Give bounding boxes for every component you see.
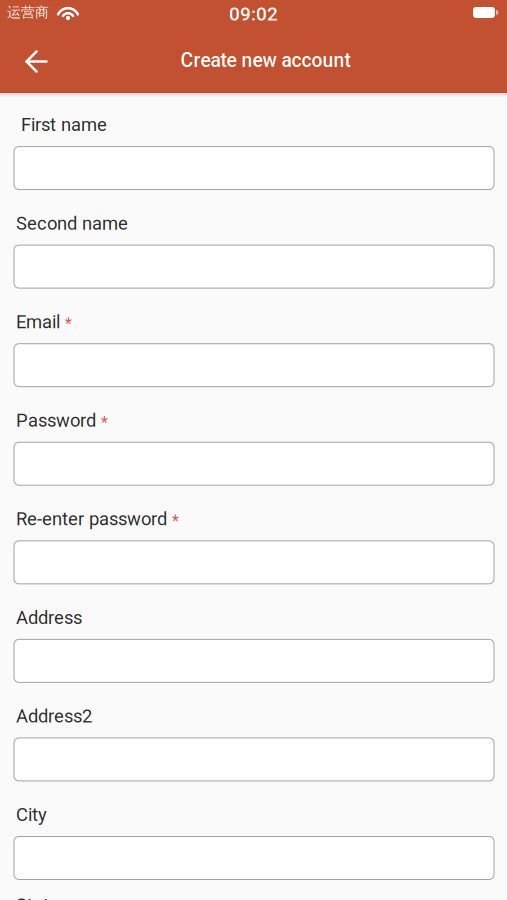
button[interactable]: Address2 text field: [14, 738, 494, 781]
button[interactable]: Password text field: [14, 442, 494, 485]
staticText: Re-enter password: [16, 508, 167, 530]
staticText: 09:02: [229, 3, 278, 25]
staticText: Email: [16, 311, 60, 333]
staticText: *: [101, 413, 108, 432]
button[interactable]: First name text field: [14, 147, 494, 190]
staticText: State: [16, 894, 59, 900]
staticText: 运营商: [7, 4, 49, 21]
staticText: City: [16, 804, 47, 825]
staticText: Second name: [16, 213, 128, 234]
button[interactable]: Re-enter password text field: [14, 541, 494, 584]
button[interactable]: Second name text field: [14, 245, 494, 288]
staticText: Password: [16, 410, 96, 431]
button[interactable]: City text field: [14, 836, 494, 879]
staticText: *: [65, 314, 72, 333]
button[interactable]: Back: [0, 25, 64, 93]
staticText: Address: [16, 607, 82, 628]
button[interactable]: Email text field: [14, 344, 494, 387]
staticText: Address2: [16, 705, 92, 727]
staticText: Create new account: [180, 49, 350, 72]
staticText: *: [172, 512, 179, 530]
staticText: First name: [21, 114, 107, 136]
button[interactable]: Address text field: [14, 639, 494, 682]
